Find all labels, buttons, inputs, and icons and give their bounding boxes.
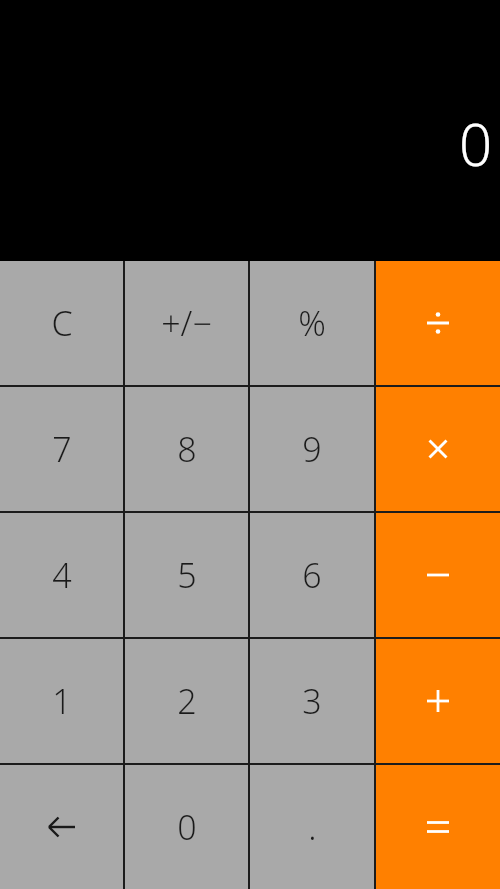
staticText: 0	[177, 804, 197, 850]
button[interactable]: Multiply	[376, 387, 500, 511]
button[interactable]: Subtract	[376, 513, 500, 637]
staticText: 6	[302, 552, 322, 598]
staticText: 8	[177, 426, 197, 472]
button[interactable]: 8	[125, 387, 248, 511]
button[interactable]: 6	[250, 513, 374, 637]
button[interactable]: 9	[250, 387, 374, 511]
staticText: %	[298, 300, 326, 346]
staticText: +/−	[161, 300, 212, 346]
button[interactable]: %	[250, 261, 374, 385]
button[interactable]: Add	[376, 639, 500, 763]
button[interactable]: 4	[0, 513, 123, 637]
button[interactable]: +/−	[125, 261, 248, 385]
staticText: 9	[302, 426, 322, 472]
button[interactable]: Backspace	[0, 765, 123, 889]
staticText: .	[308, 804, 317, 850]
button[interactable]: 7	[0, 387, 123, 511]
button[interactable]: 2	[125, 639, 248, 763]
staticText: 5	[177, 552, 197, 598]
staticText: 1	[52, 678, 72, 724]
staticText: 7	[52, 426, 72, 472]
staticText: C	[51, 300, 73, 346]
button[interactable]: 0	[125, 765, 248, 889]
staticText: 3	[302, 678, 322, 724]
button[interactable]: C	[0, 261, 123, 385]
button[interactable]: Equals	[376, 765, 500, 889]
button[interactable]: 5	[125, 513, 248, 637]
button[interactable]: Divide	[376, 261, 500, 385]
button[interactable]: 1	[0, 639, 123, 763]
staticText: 0	[458, 104, 492, 183]
staticText: 4	[52, 552, 72, 598]
button[interactable]: 3	[250, 639, 374, 763]
staticText: 2	[177, 678, 197, 724]
